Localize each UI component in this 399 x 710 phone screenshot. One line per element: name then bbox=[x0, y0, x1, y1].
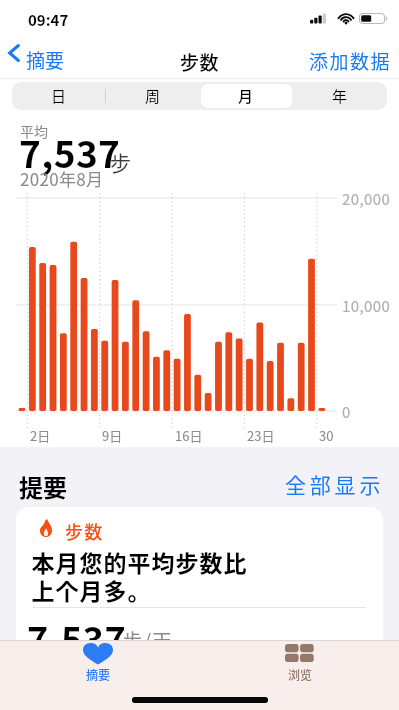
staticText: 2日 bbox=[30, 426, 51, 445]
staticText: 上个月多。 bbox=[31, 573, 151, 606]
staticText: 步 bbox=[110, 147, 131, 177]
staticText: 09:47 bbox=[28, 9, 69, 31]
button[interactable]: 浏览 bbox=[260, 640, 340, 700]
staticText: 23日 bbox=[247, 426, 275, 445]
staticText: 2020年8月 bbox=[20, 166, 104, 191]
staticText: 浏览 bbox=[288, 666, 313, 683]
button[interactable]: 周 bbox=[129, 82, 177, 110]
staticText: 日 bbox=[51, 85, 67, 107]
staticText: 添加数据 bbox=[309, 47, 392, 75]
staticText: 提要 bbox=[19, 469, 67, 504]
button[interactable]: 摘要 bbox=[5, 40, 67, 66]
staticText: 10,000 bbox=[342, 295, 391, 317]
button[interactable]: 日 bbox=[35, 82, 83, 110]
staticText: 步数 bbox=[180, 48, 220, 76]
button[interactable]: 步数 bbox=[16, 507, 383, 710]
button[interactable]: 添加数据 bbox=[0, 47, 392, 75]
staticText: 20,000 bbox=[342, 188, 391, 210]
staticText: 9日 bbox=[102, 426, 123, 445]
button[interactable]: 月 bbox=[222, 82, 270, 110]
staticText: 摘要 bbox=[26, 46, 65, 72]
staticText: 平均 bbox=[20, 121, 48, 141]
staticText: 步数 bbox=[65, 518, 104, 544]
button[interactable]: 年 bbox=[316, 82, 364, 110]
staticText: 本月您的平均步数比 bbox=[31, 545, 247, 578]
staticText: 7,537 bbox=[27, 612, 127, 664]
staticText: 7,537 bbox=[19, 125, 121, 179]
staticText: 30 bbox=[319, 426, 334, 445]
button[interactable]: 摘要 bbox=[58, 640, 138, 700]
button[interactable]: 全部显示 bbox=[0, 469, 385, 499]
staticText: 月 bbox=[238, 85, 254, 107]
staticText: 年 bbox=[332, 85, 348, 107]
staticText: 16日 bbox=[175, 426, 203, 445]
staticText: 0 bbox=[342, 401, 351, 423]
staticText: 全部显示 bbox=[285, 469, 385, 499]
staticText: 步/天 bbox=[123, 626, 173, 654]
staticText: 摘要 bbox=[86, 666, 111, 683]
staticText: 周 bbox=[145, 85, 161, 107]
